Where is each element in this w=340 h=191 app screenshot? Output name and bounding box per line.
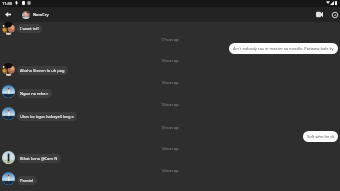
staticText: Bihat kena @Cam N — [20, 156, 58, 161]
staticText: 15 hours ago — [161, 103, 179, 107]
staticText: 14 hours ago — [161, 147, 179, 151]
staticText: 15 hours ago — [161, 126, 179, 130]
button[interactable]: I want to!! — [17, 24, 42, 33]
button[interactable]: Ain't nobody sus in master sa noodle. Pa… — [229, 43, 338, 54]
staticText: 16 hours ago — [161, 59, 179, 63]
staticText: Ain't nobody sus in master sa noodle. Pa… — [233, 46, 334, 51]
button[interactable]: Parotel — [17, 176, 37, 185]
staticText: 14 hours ago — [161, 169, 179, 173]
staticText: Soft who he di — [307, 134, 334, 139]
staticText: 17 hours ago — [161, 38, 179, 42]
staticText: 11:30 — [2, 1, 12, 6]
button[interactable]: Bihat kena @Cam N — [17, 154, 61, 163]
staticText: I want to!! — [20, 26, 39, 31]
button[interactable]: Ukes ke bgus hahayx0 bng e — [17, 112, 77, 121]
staticText: NamCry — [33, 12, 49, 17]
button[interactable]: Video call — [314, 9, 325, 20]
button[interactable]: Ngoe na reba r — [17, 89, 52, 98]
button[interactable]: Back — [0, 7, 16, 22]
button[interactable]: NamCry — [22, 10, 49, 19]
button[interactable]: Soft who he di — [303, 131, 338, 142]
button[interactable]: Ahaha Steven ta uh pag — [17, 66, 68, 75]
button[interactable]: Voice call — [329, 9, 340, 20]
staticText: Ukes ke bgus hahayx0 bng e — [20, 114, 74, 119]
staticText: Parotel — [20, 178, 34, 183]
staticText: Ngoe na reba r — [20, 91, 49, 96]
staticText: 16 hours ago — [161, 81, 179, 85]
staticText: Ahaha Steven ta uh pag — [20, 68, 65, 73]
